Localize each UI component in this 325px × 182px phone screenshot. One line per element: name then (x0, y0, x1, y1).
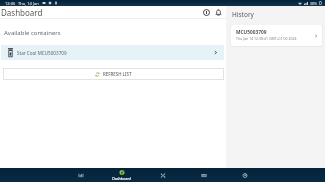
button[interactable]: REFRESH LIST (3, 68, 224, 80)
button[interactable]: Notifications (213, 7, 224, 18)
staticText: Thu, 14 Jan (18, 1, 39, 6)
staticText: Dashboard (112, 176, 131, 181)
staticText: Thu Jan 14 12:38:41 GMT+01:00 2024 (236, 36, 297, 41)
button[interactable]: Dashboard (101, 168, 142, 182)
button[interactable]: Data (183, 168, 224, 182)
staticText: 38% (310, 1, 318, 6)
staticText: Dashboard (1, 7, 43, 18)
button[interactable]: Clock (224, 168, 265, 182)
staticText: Star Cool MCU5003709 (17, 50, 67, 56)
button[interactable]: Reports (60, 168, 101, 182)
button[interactable]: Tools (142, 168, 183, 182)
staticText: MCU5003709 (236, 29, 267, 36)
button[interactable]: MCU5003709 (231, 25, 322, 46)
staticText: REFRESH LIST (103, 71, 132, 77)
button[interactable]: Info (201, 7, 212, 18)
button[interactable]: Star Cool MCU5003709 (1, 45, 224, 60)
staticText: 12:06 (5, 1, 16, 6)
staticText: Available containers (4, 29, 61, 37)
staticText: History (232, 10, 254, 19)
